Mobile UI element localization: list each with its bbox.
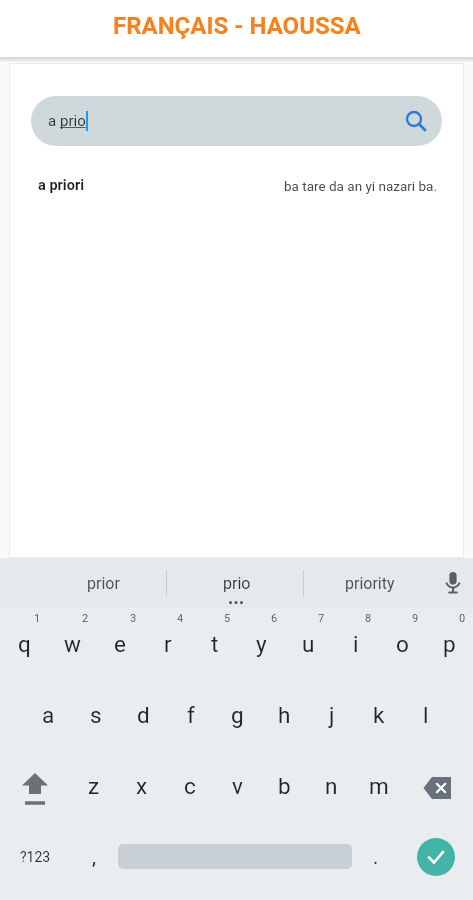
button[interactable]: 5 [191,608,238,679]
staticText: y [256,631,267,657]
button[interactable]: 2 [48,608,96,679]
staticText: , [92,845,96,868]
button[interactable]: priority [307,558,433,608]
staticText: ba tare da an yi nazari ba. [284,178,437,194]
staticText: 4 [177,612,184,625]
button[interactable]: j [308,679,355,750]
button[interactable]: z [70,750,118,821]
staticText: g [231,702,244,728]
staticText: n [325,773,338,799]
button[interactable]: 7 [285,608,332,679]
staticText: a priori [38,177,85,194]
staticText: c [184,773,196,799]
staticText: v [232,773,243,799]
staticText: h [278,702,291,728]
button[interactable]: , [70,821,118,892]
button[interactable]: a [24,679,72,750]
button[interactable]: . [352,821,399,892]
button[interactable]: 6 [238,608,285,679]
button[interactable]: 3 [96,608,144,679]
staticText: prio [223,574,251,593]
button[interactable]: prior [40,558,166,608]
button[interactable]: 0 [426,608,473,679]
staticText: 3 [130,612,137,625]
staticText: o [396,631,409,657]
staticText: m [369,773,389,799]
staticText: z [88,773,100,799]
button[interactable]: 4 [144,608,191,679]
staticText: ?123 [20,849,51,865]
staticText: 8 [365,612,372,625]
button[interactable]: g [214,679,261,750]
button[interactable]: h [261,679,308,750]
staticText: b [278,773,291,799]
button[interactable]: m [355,750,402,821]
button[interactable]: d [120,679,167,750]
button[interactable]: c [166,750,214,821]
button[interactable]: 1 [0,608,48,679]
staticText: u [302,631,315,657]
staticText: 7 [318,612,325,625]
button[interactable] [399,821,473,892]
staticText: a [48,112,60,130]
staticText: j [329,702,335,728]
button[interactable]: prio [170,558,303,608]
staticText: 1 [34,612,41,625]
button[interactable]: x [118,750,166,821]
staticText: x [136,773,148,799]
button[interactable]: a priori [38,177,437,194]
button[interactable] [433,558,473,608]
button[interactable] [402,750,473,821]
staticText: 6 [271,612,278,625]
staticText: i [353,631,359,657]
staticText: a [42,702,55,728]
staticText: FRANÇAIS - HAOUSSA [113,12,361,40]
button[interactable]: a [31,96,442,146]
staticText: f [187,702,195,728]
staticText: 2 [82,612,89,625]
button[interactable] [0,750,70,821]
staticText: e [114,631,126,657]
button[interactable]: ?123 [0,821,70,892]
staticText: 5 [224,612,231,625]
button[interactable]: 9 [379,608,426,679]
staticText: prio [60,112,86,130]
button[interactable]: l [402,679,449,750]
staticText: s [90,702,102,728]
button[interactable]: b [261,750,308,821]
staticText: priority [345,574,395,593]
staticText: t [211,631,219,657]
staticText: l [423,702,429,728]
button[interactable]: s [72,679,120,750]
button[interactable] [118,821,352,892]
staticText: 0 [459,612,466,625]
staticText: w [64,631,81,657]
button[interactable]: FRANÇAIS - HAOUSSA [0,0,473,57]
staticText: q [18,631,31,657]
button[interactable]: f [167,679,214,750]
button[interactable]: v [214,750,261,821]
button[interactable]: k [355,679,402,750]
staticText: d [137,702,150,728]
staticText: r [164,631,172,657]
button[interactable]: n [308,750,355,821]
staticText: k [373,702,385,728]
staticText: 9 [412,612,419,625]
staticText: prior [87,574,120,593]
button[interactable]: 8 [332,608,379,679]
staticText: p [443,631,456,657]
staticText: . [373,845,379,868]
